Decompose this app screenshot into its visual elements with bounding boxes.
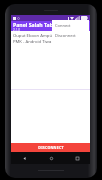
staticText: PMK - Android Tiwa [13,39,52,45]
button[interactable]: More options [82,21,90,31]
button[interactable]: Disconnect [52,30,89,41]
button[interactable]: Recent apps [64,152,90,164]
staticText: 2.1.0 [13,28,21,31]
staticText: Ouput Eboon Ampülya [13,33,58,39]
button[interactable]: Back [11,152,38,164]
staticText: Disconnect [55,33,76,38]
button[interactable]: DISCONNECT [11,143,90,152]
staticText: Panel Salah Table [13,21,58,28]
staticText: Connect [55,23,71,28]
button[interactable]: Home [38,152,64,164]
staticText: DISCONNECT [38,145,64,150]
button[interactable]: Connect [52,20,89,30]
